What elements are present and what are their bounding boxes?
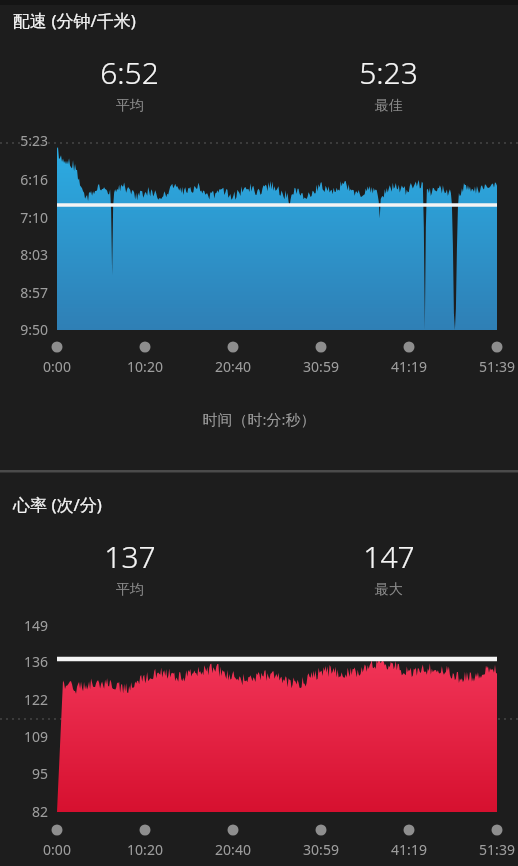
staticText: 0:00 — [22, 840, 92, 859]
staticText: 147 — [363, 536, 415, 577]
button[interactable]: 5:23 — [259, 52, 518, 115]
button[interactable]: 147 — [259, 536, 518, 599]
staticText: 41:19 — [374, 357, 444, 376]
button[interactable]: 配速 (分钟/千米) — [13, 9, 136, 32]
button[interactable]: 6:52 — [0, 52, 259, 115]
staticText: 20:40 — [198, 357, 268, 376]
staticText: 5:23 — [0, 131, 48, 150]
button[interactable]: 137 — [0, 536, 259, 599]
staticText: 心率 (次/分) — [13, 493, 102, 516]
staticText: 平均 — [116, 581, 144, 599]
staticText: 30:59 — [286, 840, 356, 859]
staticText: 9:50 — [0, 320, 48, 339]
button[interactable]: 心率 (次/分) — [13, 493, 102, 516]
staticText: 109 — [0, 727, 48, 746]
staticText: 149 — [0, 616, 48, 635]
staticText: 平均 — [116, 97, 144, 115]
staticText: 10:20 — [110, 357, 180, 376]
staticText: 最佳 — [375, 97, 403, 115]
staticText: 30:59 — [286, 357, 356, 376]
staticText: 6:16 — [0, 170, 48, 189]
staticText: 82 — [0, 802, 48, 821]
staticText: 7:10 — [0, 208, 48, 227]
staticText: 51:39 — [462, 840, 518, 859]
staticText: 0:00 — [22, 357, 92, 376]
staticText: 137 — [104, 536, 156, 577]
staticText: 8:03 — [0, 245, 48, 264]
staticText: 8:57 — [0, 283, 48, 302]
staticText: 5:23 — [359, 52, 418, 93]
staticText: 51:39 — [462, 357, 518, 376]
staticText: 122 — [0, 690, 48, 709]
staticText: 最大 — [375, 581, 403, 599]
staticText: 配速 (分钟/千米) — [13, 9, 136, 32]
staticText: 6:52 — [100, 52, 159, 93]
staticText: 10:20 — [110, 840, 180, 859]
staticText: 95 — [0, 764, 48, 783]
staticText: 时间（时:分:秒） — [0, 409, 518, 429]
staticText: 41:19 — [374, 840, 444, 859]
other: Pace and heart rate charts — [0, 0, 518, 866]
staticText: 20:40 — [198, 840, 268, 859]
staticText: 136 — [0, 652, 48, 671]
